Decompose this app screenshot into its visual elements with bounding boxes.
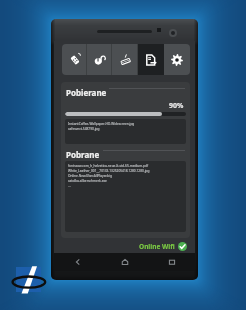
- button[interactable]: Back: [54, 253, 101, 271]
- staticText: Pobrane: [66, 149, 100, 160]
- staticText: ...: [68, 184, 71, 188]
- staticText: Online Wifi: [139, 242, 175, 251]
- button[interactable]: Remote: [62, 44, 87, 75]
- button[interactable]: fontssow.com_h_helvetica-neue-lt-std-65-…: [65, 161, 186, 232]
- staticText: fontssow.com_h_helvetica-neue-lt-std-65-…: [68, 164, 149, 168]
- staticText: White_Leather_001__70133.1325205418.1280…: [68, 169, 150, 173]
- button[interactable]: Recents: [148, 253, 195, 271]
- button[interactable]: File transfer: [138, 44, 164, 75]
- staticText: InstantCoffee-Wallpaper-HD-Widescreen.jp…: [68, 122, 135, 126]
- staticText: Online.New.Uber.AllPlayer.big: [68, 174, 112, 178]
- staticText: cafesvect-548790.jpg: [68, 127, 100, 131]
- button[interactable]: Keyboard: [112, 44, 138, 75]
- staticText: Pobierane: [66, 87, 107, 98]
- staticText: 90%: [169, 101, 184, 111]
- button[interactable]: InstantCoffee-Wallpaper-HD-Widescreen.jp…: [65, 119, 186, 144]
- staticText: catolka-silberschmerk.exe: [68, 179, 107, 183]
- button[interactable]: Settings: [164, 44, 190, 75]
- button[interactable]: Mouse: [87, 44, 112, 75]
- button[interactable]: Home: [101, 253, 148, 271]
